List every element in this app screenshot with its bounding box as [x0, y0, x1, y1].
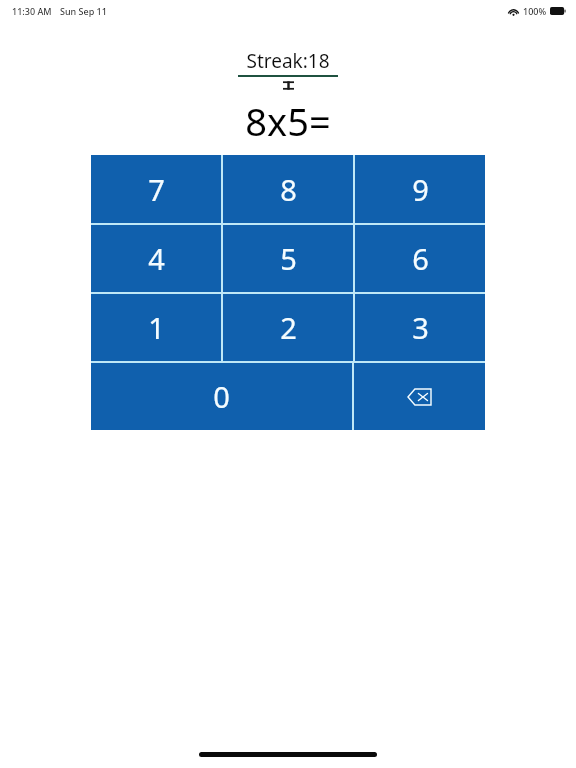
button[interactable]: 6: [355, 225, 485, 292]
button[interactable]: Backspace: [354, 363, 485, 430]
button[interactable]: Streak:18: [238, 48, 338, 74]
staticText: 11:30 AM: [12, 5, 52, 17]
staticText: 1: [148, 308, 165, 347]
button[interactable]: 5: [223, 225, 353, 292]
button[interactable]: 9: [355, 155, 485, 223]
button[interactable]: 2: [223, 294, 353, 361]
staticText: 8: [280, 170, 297, 209]
button[interactable]: 0: [91, 363, 352, 430]
button[interactable]: 8: [223, 155, 353, 223]
staticText: 100%: [523, 5, 547, 17]
staticText: 2: [280, 308, 297, 347]
staticText: 8x5=: [245, 95, 331, 147]
staticText: 7: [148, 170, 165, 209]
staticText: 6: [412, 239, 429, 278]
staticText: 0: [213, 377, 230, 416]
staticText: 3: [412, 308, 429, 347]
staticText: Sun Sep 11: [60, 5, 107, 17]
button[interactable]: 7: [91, 155, 221, 223]
staticText: 5: [280, 239, 297, 278]
button[interactable]: 4: [91, 225, 221, 292]
staticText: Streak:18: [246, 48, 330, 74]
button[interactable]: 1: [91, 294, 221, 361]
staticText: 4: [148, 239, 165, 278]
button[interactable]: 3: [355, 294, 485, 361]
staticText: 9: [412, 170, 429, 209]
